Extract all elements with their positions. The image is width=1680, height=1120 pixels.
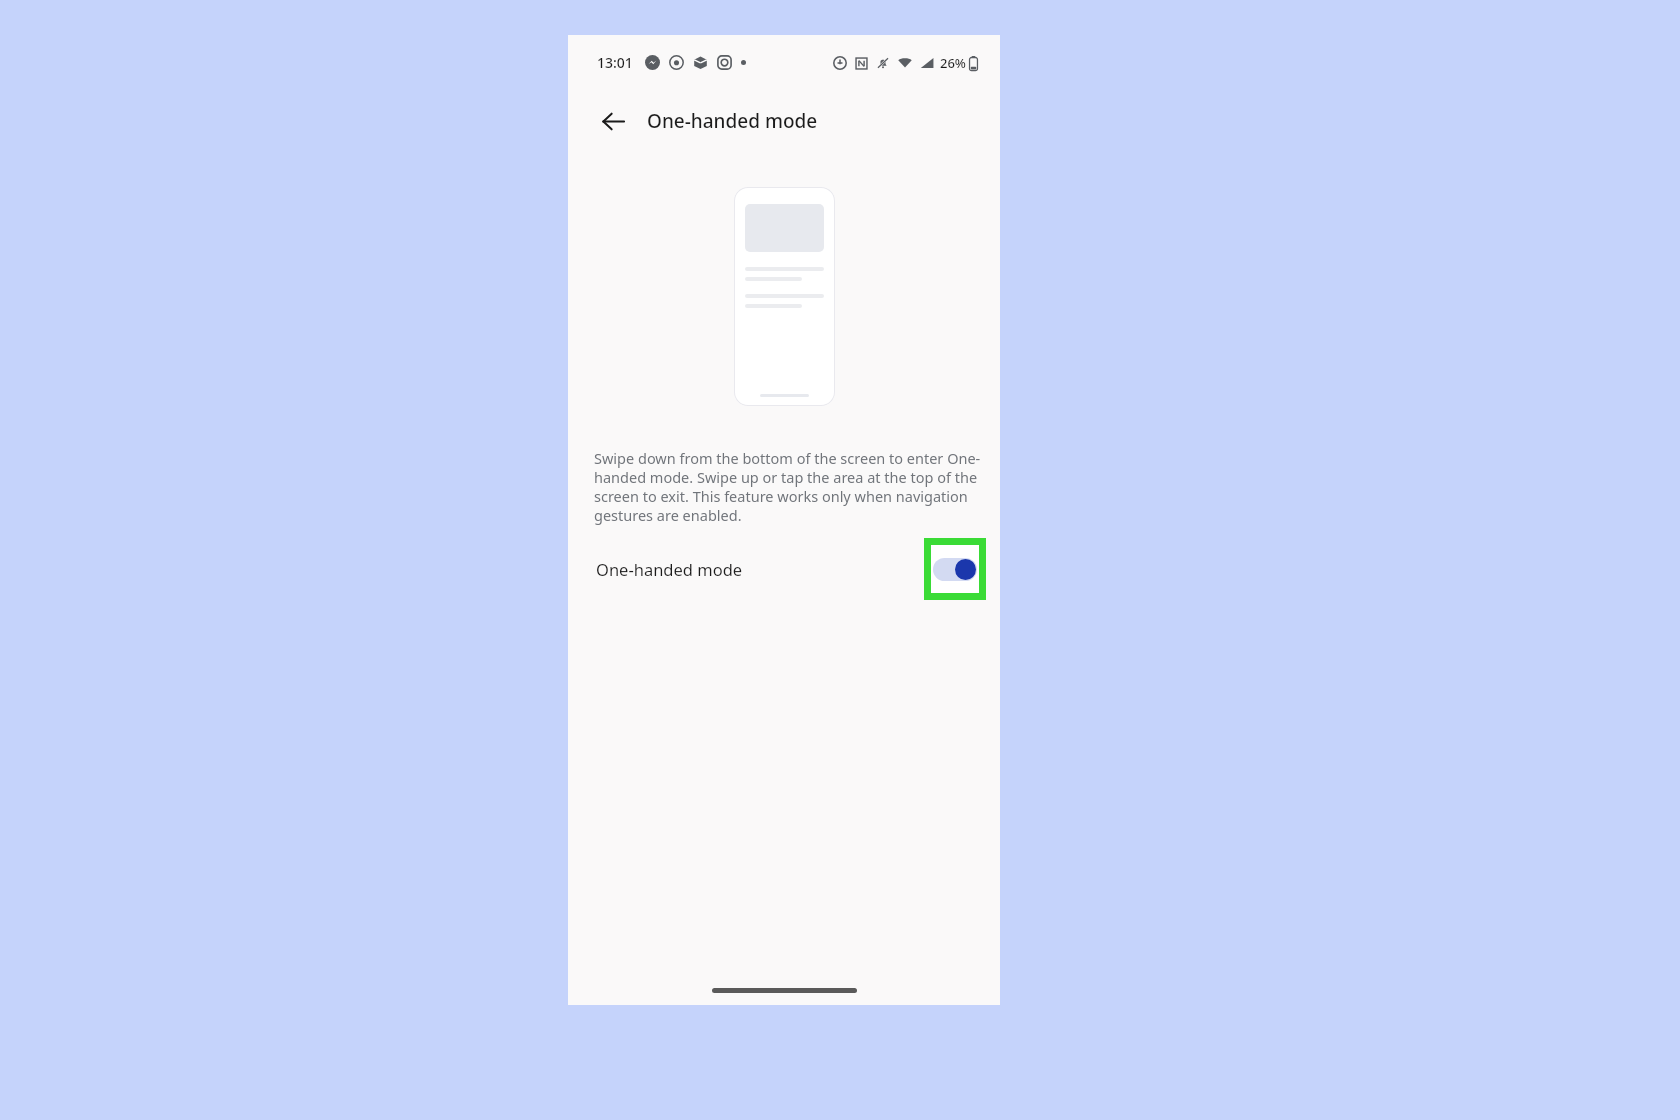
staticText: 26%: [940, 54, 966, 72]
staticText: One-handed mode: [647, 108, 818, 134]
staticText: One-handed mode: [596, 558, 743, 580]
button[interactable]: Back: [593, 101, 633, 141]
staticText: 13:01: [597, 53, 633, 72]
staticText: Swipe down from the bottom of the screen…: [594, 448, 988, 526]
button[interactable]: One-handed mode: [568, 538, 1000, 600]
